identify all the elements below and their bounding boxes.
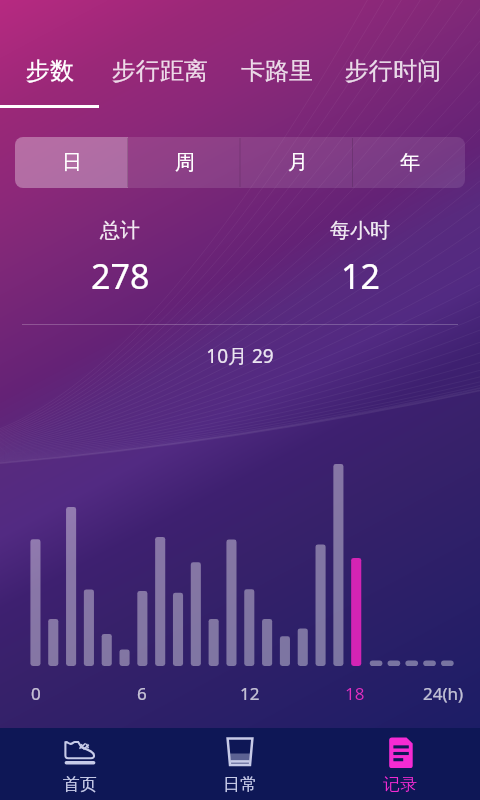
staticText: 278 [91,253,150,299]
staticText: 6 [137,682,147,705]
staticText: 步行距离 [112,56,208,86]
staticText: 首页 [63,774,97,795]
button[interactable]: 卡路里 [221,0,332,108]
button[interactable]: 周 [128,137,241,188]
staticText: 日常 [223,774,257,795]
staticText: 步行时间 [345,56,441,86]
button[interactable]: 步数 [0,0,99,108]
button[interactable]: 年 [354,137,465,188]
staticText: 卡路里 [241,56,313,86]
staticText: 年 [400,150,420,175]
staticText: 0 [31,682,41,705]
staticText: 记录 [383,774,417,795]
staticText: 每小时 [330,218,390,243]
staticText: 12 [341,253,380,299]
button[interactable]: 步行时间 [332,0,454,108]
staticText: 12 [240,682,260,705]
button[interactable]: 步行距离 [99,0,221,108]
staticText: 步数 [26,56,74,86]
staticText: 周 [175,150,195,175]
button[interactable]: 日 [15,137,128,188]
button[interactable]: 月 [241,137,354,188]
staticText: 18 [345,682,365,705]
button[interactable]: 日常 [160,728,320,800]
staticText: 10月 29 [0,343,480,369]
button[interactable]: 记录 [320,728,480,800]
button[interactable]: 首页 [0,728,160,800]
staticText: 总计 [100,218,140,243]
staticText: 月 [288,150,308,175]
staticText: 日 [62,150,82,175]
staticText: 24(h) [423,682,464,705]
